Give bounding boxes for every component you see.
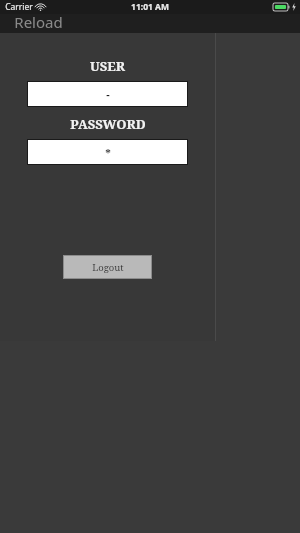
staticText: USER [90, 57, 125, 75]
other: Battery full [273, 3, 290, 11]
button[interactable]: Reload [12, 12, 65, 31]
staticText: Logout [92, 261, 124, 274]
other: Wi-Fi signal [36, 4, 45, 11]
button[interactable]: Logout [63, 255, 152, 279]
staticText: * [105, 145, 111, 160]
staticText: Carrier [5, 1, 33, 13]
button[interactable]: * [27, 139, 188, 165]
other: Charging [292, 3, 296, 11]
staticText: Reload [14, 12, 63, 31]
button[interactable]: - [27, 81, 188, 107]
staticText: - [106, 87, 110, 102]
staticText: PASSWORD [70, 115, 146, 133]
staticText: 11:01 AM [131, 1, 169, 13]
